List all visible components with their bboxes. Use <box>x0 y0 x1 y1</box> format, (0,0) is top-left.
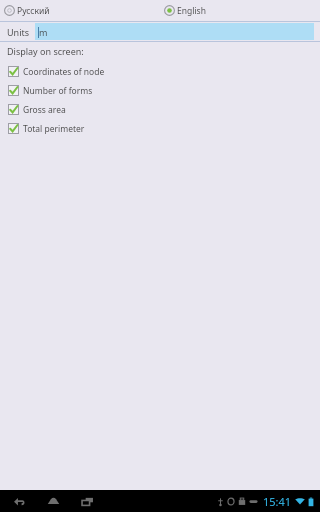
staticText: Number of forms <box>23 85 93 97</box>
staticText: Display on screen: <box>7 45 84 57</box>
staticText: Gross area <box>23 104 66 116</box>
button[interactable]: Русский <box>0 0 160 21</box>
button[interactable]: Gross area <box>0 100 320 119</box>
button[interactable]: Total perimeter <box>0 119 320 138</box>
button[interactable]: Status <box>217 494 316 509</box>
staticText: English <box>177 5 206 17</box>
staticText: m <box>39 26 48 38</box>
staticText: Total perimeter <box>23 123 85 135</box>
button[interactable]: English <box>160 0 320 21</box>
staticText: Coordinates of node <box>23 66 105 78</box>
button[interactable]: Home <box>40 490 66 512</box>
staticText: Русский <box>17 5 50 17</box>
button[interactable]: Back <box>6 490 32 512</box>
button[interactable]: m <box>35 23 314 40</box>
staticText: Units <box>7 26 30 38</box>
button[interactable]: Coordinates of node <box>0 62 320 81</box>
button[interactable]: Number of forms <box>0 81 320 100</box>
button[interactable]: Recent apps <box>74 490 100 512</box>
staticText: 15:41 <box>262 494 291 509</box>
